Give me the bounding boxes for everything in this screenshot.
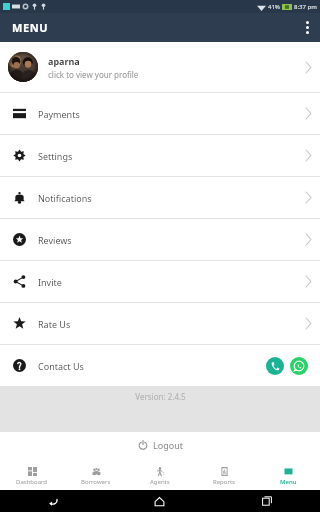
button[interactable]: Reports [192,462,256,490]
staticText: Invite [38,276,62,288]
button[interactable]: Contact Us [0,345,320,386]
staticText: Menu [280,478,297,486]
button[interactable]: Call support [266,357,284,375]
staticText: 41% [268,3,280,11]
staticText: Contact Us [38,360,84,372]
button[interactable]: WhatsApp support [290,357,308,375]
button[interactable]: aparna [0,42,320,92]
staticText: Logout [153,439,183,451]
staticText: Notifications [38,192,92,204]
staticText: Agents [150,478,170,486]
staticText: Settings [38,150,73,162]
button[interactable]: Borrowers [64,462,128,490]
button[interactable]: Reviews [0,219,320,260]
button[interactable]: More options [294,13,320,42]
button[interactable]: Logout [0,432,320,458]
staticText: aparna [48,55,80,67]
button[interactable]: Rate Us [0,303,320,344]
staticText: Reviews [38,234,72,246]
button[interactable]: Agents [128,462,192,490]
staticText: Version: 2.4.5 [135,391,186,402]
staticText: MENU [12,20,49,35]
button[interactable]: Menu [256,462,320,490]
button[interactable]: Payments [0,93,320,134]
button[interactable]: Invite [0,261,320,302]
button[interactable]: Notifications [0,177,320,218]
staticText: Rate Us [38,318,71,330]
button[interactable]: Home [106,490,213,512]
button[interactable]: Settings [0,135,320,176]
button[interactable]: Back [0,490,106,512]
button[interactable]: Dashboard [0,462,64,490]
staticText: Dashboard [16,478,48,486]
staticText: Payments [38,108,80,120]
staticText: click to view your profile [48,69,139,80]
staticText: 8:37 pm [294,3,317,11]
button[interactable]: Recent apps [213,490,320,512]
staticText: Reports [213,478,235,486]
staticText: Borrowers [81,478,111,486]
